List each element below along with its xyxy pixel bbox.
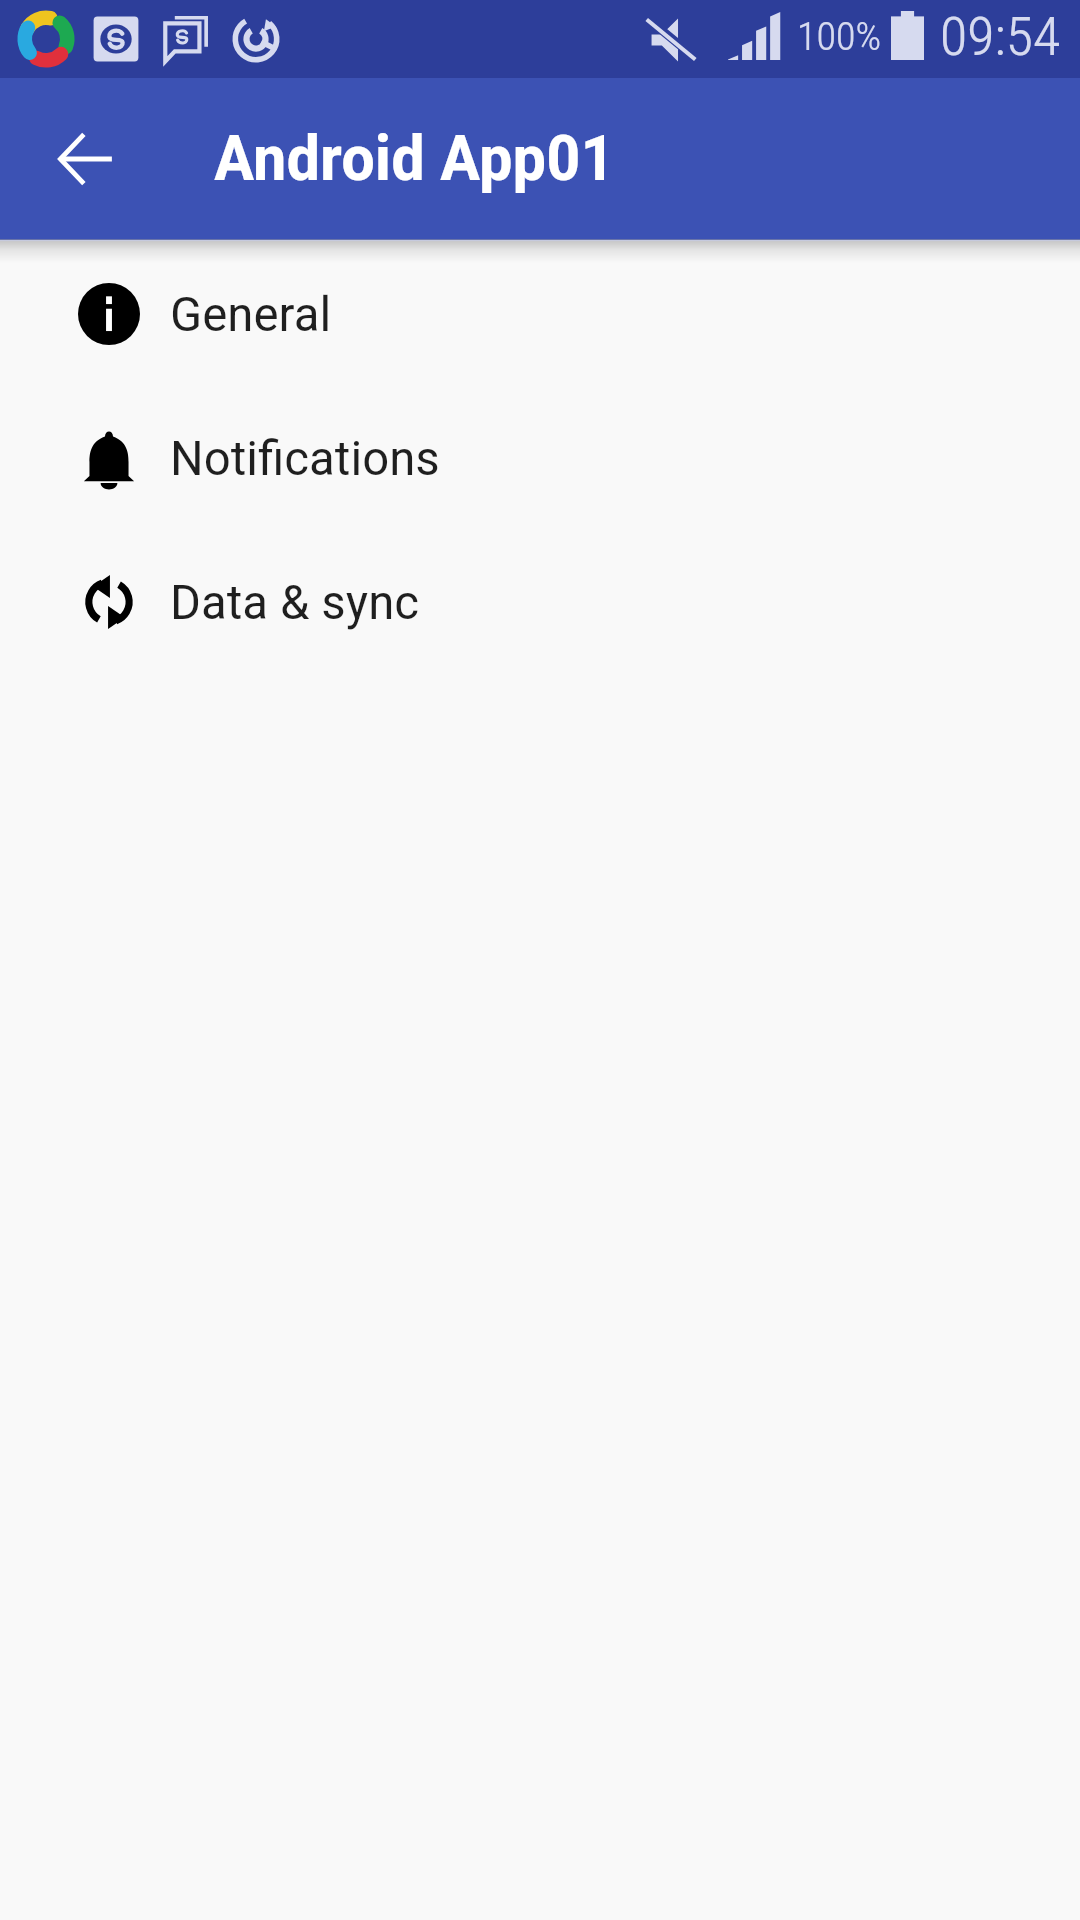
staticText: 100%	[797, 15, 882, 60]
button[interactable]: Notifications	[0, 386, 1080, 530]
button[interactable]: General	[0, 242, 1080, 386]
button[interactable]: Data & sync	[0, 530, 1080, 674]
staticText: Notifications	[170, 430, 440, 487]
button[interactable]: Back	[40, 114, 130, 204]
staticText: 09:54	[940, 6, 1061, 68]
staticText: Android App01	[214, 122, 615, 196]
staticText: General	[170, 286, 332, 343]
staticText: Data & sync	[170, 574, 420, 631]
